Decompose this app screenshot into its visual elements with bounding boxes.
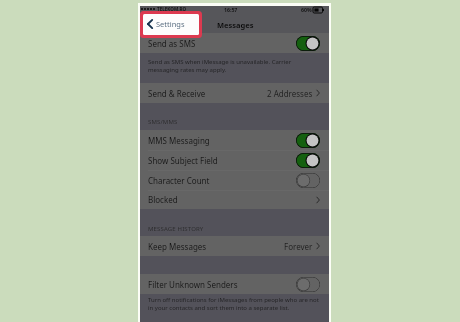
button[interactable]: Show Subject Field <box>140 150 329 170</box>
staticText: Character Count <box>148 175 210 186</box>
staticText: Settings <box>156 19 185 29</box>
staticText: Turn off notifications for iMessages fro… <box>148 296 319 312</box>
button[interactable]: Filter Unknown Senders <box>140 274 329 294</box>
staticText: 2 Addresses <box>267 88 313 99</box>
staticText: Messages <box>217 20 254 30</box>
button[interactable]: MMS Messaging <box>140 130 329 150</box>
staticText: 60% <box>301 6 312 13</box>
button[interactable]: Back to Settings <box>143 14 199 35</box>
button[interactable]: Send as SMS <box>140 33 329 53</box>
staticText: Send as SMS <box>148 38 196 49</box>
staticText: Send as SMS when iMessage is unavailable… <box>148 58 292 73</box>
staticText: 16:57 <box>224 6 238 13</box>
button[interactable]: Send as SMS on <box>296 36 320 51</box>
button[interactable]: MMS Messaging on <box>296 133 320 148</box>
staticText: TELEKOM.RO <box>157 6 187 12</box>
button[interactable]: Show Subject Field on <box>296 153 320 168</box>
staticText: Blocked <box>148 194 178 205</box>
staticText: Keep Messages <box>148 241 207 252</box>
button[interactable]: Character Count off <box>296 173 320 188</box>
staticText: Filter Unknown Senders <box>148 279 238 290</box>
button[interactable]: Keep Messages <box>140 236 329 256</box>
button[interactable]: Filter Unknown Senders off <box>296 277 320 292</box>
staticText: SMS/MMS <box>148 118 178 126</box>
staticText: Send & Receive <box>148 88 206 99</box>
staticText: MMS Messaging <box>148 135 210 146</box>
button[interactable]: Character Count <box>140 170 329 190</box>
staticText: Forever <box>284 241 313 252</box>
button[interactable]: Blocked <box>140 190 329 209</box>
staticText: MESSAGE HISTORY <box>148 225 204 233</box>
staticText: Show Subject Field <box>148 155 218 166</box>
button[interactable]: Send & Receive <box>140 83 329 103</box>
